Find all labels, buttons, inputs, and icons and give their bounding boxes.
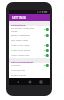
button[interactable]: Toggle [43,53,49,58]
staticText: Set up your Notification [11,27,35,30]
staticText: Audio Alarm Sound [11,49,42,52]
button[interactable]: Back [16,80,20,84]
staticText: Audio Alarm Notify [11,44,42,47]
button[interactable]: Toggle [43,43,49,48]
button[interactable]: Toggle [43,48,49,53]
staticText: Disk Space Notify [11,39,42,42]
staticText: Notification [11,23,26,26]
staticText: SETTINGS [12,16,26,20]
button[interactable]: Notify Sound Level [9,53,50,58]
button[interactable]: Privacy Tracker [9,73,50,78]
button[interactable]: Set up your Notification [9,26,50,33]
button[interactable]: Auto Sync [9,63,50,68]
staticText: Data Management [11,60,34,63]
button[interactable]: Recents [39,80,43,84]
button[interactable]: Audio Alarm Sound [9,48,50,53]
button[interactable]: Disk Space Notify [9,38,50,43]
staticText: Notify Sound Level [11,54,42,57]
button[interactable]: Toggle [43,27,49,32]
staticText: Battery Notification [11,34,42,37]
button[interactable]: Home [28,80,32,84]
button[interactable]: Toggle [43,63,49,68]
button[interactable]: Battery Notification [9,33,50,38]
button[interactable]: SETTINGS [9,14,50,21]
staticText: Privacy Tracker [11,74,42,77]
button[interactable]: Toggle [43,33,49,38]
button[interactable]: Audio Alarm Notify [9,43,50,48]
button[interactable]: Auto Wifi Sync [9,68,50,73]
staticText: Auto Wifi Sync [11,69,42,72]
staticText: Auto Sync [11,64,42,67]
staticText: Sound [11,30,18,33]
